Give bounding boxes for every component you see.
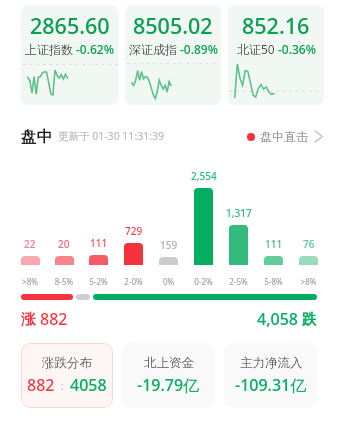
staticText: 729 <box>125 224 143 238</box>
staticText: 111 <box>265 237 283 251</box>
staticText: 更新于 01-30 11:31:39 <box>58 129 165 143</box>
staticText: 深证成指 <box>129 42 177 57</box>
staticText: 北证50 <box>237 41 275 57</box>
staticText: 76 <box>303 237 315 251</box>
staticText: 2-0% <box>116 276 151 287</box>
button[interactable]: 盘中直击 <box>247 129 324 144</box>
staticText: 跌 <box>302 310 317 328</box>
staticText: -0.62% <box>76 41 114 57</box>
staticText: 8-5% <box>47 276 81 287</box>
button[interactable]: 2865.60 <box>21 5 118 105</box>
staticText: 盘中直击 <box>260 129 308 144</box>
staticText: >8% <box>291 276 326 287</box>
staticText: 4058 <box>70 374 107 396</box>
staticText: 159 <box>160 238 178 252</box>
staticText: 主力净流入 <box>240 355 303 371</box>
staticText: -109.31亿 <box>235 374 307 396</box>
staticText: 涨跌分布 <box>42 355 92 371</box>
staticText: 4,058 <box>257 308 298 330</box>
staticText: 2-5% <box>221 276 256 287</box>
staticText: 盘中 <box>21 127 52 145</box>
staticText: -0.89% <box>180 41 218 57</box>
staticText: 0-2% <box>186 276 221 287</box>
staticText: -0.36% <box>278 41 316 57</box>
staticText: 5-2% <box>81 276 116 287</box>
staticText: 852.16 <box>242 11 310 40</box>
staticText: -19.79亿 <box>137 374 200 396</box>
button[interactable]: 北上资金 <box>122 343 215 408</box>
staticText: : <box>55 378 70 393</box>
staticText: 22 <box>24 237 36 251</box>
staticText: 涨 <box>21 310 36 328</box>
staticText: 1,317 <box>226 206 252 220</box>
staticText: 北上资金 <box>144 355 194 371</box>
staticText: >8% <box>13 276 47 287</box>
staticText: 20 <box>58 237 70 251</box>
staticText: 5-8% <box>256 276 291 287</box>
staticText: 111 <box>90 236 108 250</box>
button[interactable]: 涨跌分布 <box>21 343 113 408</box>
other: More intraday news <box>314 130 324 143</box>
button[interactable]: 主力净流入 <box>224 343 317 408</box>
staticText: 2865.60 <box>30 11 110 40</box>
staticText: 2,554 <box>191 169 217 183</box>
staticText: 0% <box>151 276 186 287</box>
button[interactable]: 852.16 <box>228 5 324 105</box>
staticText: 上证指数 <box>25 42 73 57</box>
staticText: 882 <box>40 308 68 330</box>
staticText: 8505.02 <box>133 11 213 40</box>
staticText: 882 <box>27 374 55 396</box>
button[interactable]: 8505.02 <box>125 5 221 105</box>
